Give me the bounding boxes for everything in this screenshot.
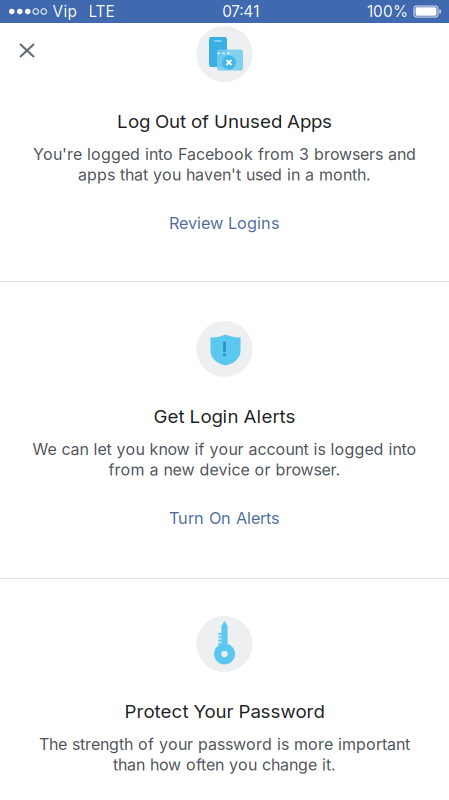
staticText: 07:41 xyxy=(222,2,259,21)
staticText: from a new device or browser. xyxy=(108,460,340,479)
staticText: Log Out of Unused Apps xyxy=(117,110,332,133)
button[interactable]: Turn On Alerts xyxy=(0,498,449,538)
button[interactable]: Review Logins xyxy=(0,203,449,243)
button[interactable]: Close xyxy=(0,0,52,74)
staticText: 100% xyxy=(367,2,408,21)
staticText: LTE xyxy=(88,2,114,21)
staticText: Get Login Alerts xyxy=(153,405,295,428)
staticText: Protect Your Password xyxy=(124,700,324,723)
staticText: apps that you haven't used in a month. xyxy=(78,165,371,184)
staticText: Vip xyxy=(52,2,76,21)
staticText: The strength of your password is more im… xyxy=(39,735,410,754)
staticText: You're logged into Facebook from 3 brows… xyxy=(33,145,416,164)
staticText: We can let you know if your account is l… xyxy=(32,440,416,459)
staticText: Review Logins xyxy=(169,213,280,233)
staticText: Turn On Alerts xyxy=(169,508,280,528)
staticText: than how often you change it. xyxy=(113,755,336,774)
